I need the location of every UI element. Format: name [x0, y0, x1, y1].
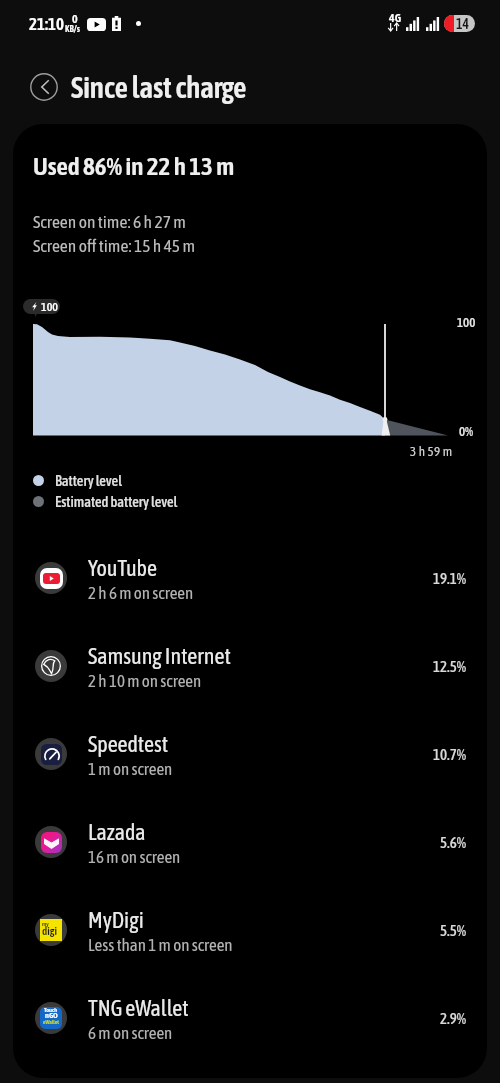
staticText: eWallet	[43, 1019, 59, 1025]
staticText: digi	[42, 925, 58, 938]
staticText: 16 m on screen	[88, 847, 181, 866]
staticText: Estimated battery level	[55, 493, 178, 510]
staticText: 21:10	[29, 14, 64, 33]
staticText: 14	[456, 16, 470, 32]
staticText: 6 m on screen	[88, 1023, 173, 1042]
staticText: 1 m on screen	[88, 759, 173, 778]
staticText: Screen on time: 6 h 27 m	[33, 212, 186, 232]
staticText: 2 h 10 m on screen	[88, 671, 202, 690]
staticText: Lazada	[88, 819, 146, 844]
button[interactable]: YouTube	[13, 534, 487, 622]
staticText: Screen off time: 15 h 45 m	[33, 236, 196, 256]
button[interactable]: Speedtest	[13, 710, 487, 798]
staticText: 12.5%	[433, 658, 467, 675]
button[interactable]: Samsung Internet	[13, 622, 487, 710]
staticText: Since last charge	[71, 71, 247, 104]
staticText: Touch	[44, 1007, 58, 1013]
staticText: Speedtest	[88, 731, 169, 756]
button[interactable]: Back	[27, 70, 61, 104]
staticText: nGO	[45, 1011, 58, 1020]
button[interactable]: Lazada	[13, 798, 487, 886]
staticText: 3 h 59 m	[410, 444, 453, 459]
staticText: 100	[41, 300, 58, 314]
staticText: 0	[72, 12, 78, 26]
staticText: MyDigi	[88, 907, 144, 932]
staticText: Less than 1 m on screen	[88, 935, 233, 954]
staticText: 5.6%	[440, 834, 467, 851]
button[interactable]: my	[13, 886, 487, 974]
staticText: KB/s	[65, 24, 80, 34]
button[interactable]: Touch	[13, 974, 487, 1062]
staticText: 5.5%	[440, 922, 467, 939]
staticText: 10.7%	[433, 746, 467, 763]
staticText: 2.9%	[440, 1010, 467, 1027]
staticText: Battery level	[55, 472, 123, 489]
staticText: 19.1%	[433, 570, 467, 587]
staticText: my	[42, 920, 49, 927]
staticText: 2 h 6 m on screen	[88, 583, 194, 602]
staticText: TNG eWallet	[88, 995, 189, 1020]
staticText: Used 86% in 22 h 13 m	[33, 152, 235, 181]
staticText: YouTube	[88, 555, 158, 580]
staticText: 0%	[459, 424, 474, 439]
staticText: Samsung Internet	[88, 643, 231, 668]
staticText: 100	[457, 315, 476, 330]
staticText: 4G	[389, 11, 402, 25]
